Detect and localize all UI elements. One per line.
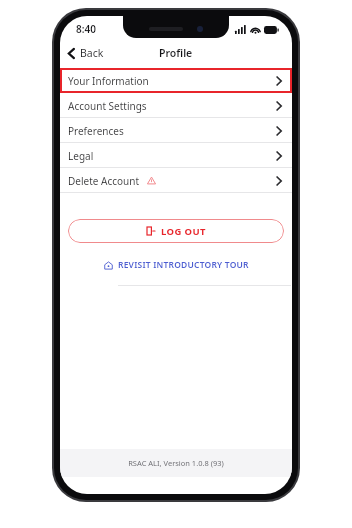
button[interactable]: Delete Account [60,168,292,193]
staticText: Legal [68,149,94,163]
button[interactable]: REVISIT INTRODUCTORY TOUR [98,257,255,273]
button[interactable]: Back [60,43,110,63]
staticText: RSAC ALI, Version 1.0.8 (93) [128,458,224,468]
button[interactable]: Account Settings [60,93,292,118]
button[interactable]: Preferences [60,118,292,143]
staticText: Your Information [68,74,149,88]
button[interactable]: Legal [60,143,292,168]
staticText: Preferences [68,124,124,138]
staticText: Delete Account [68,174,140,188]
staticText: Profile [159,46,193,60]
staticText: Account Settings [68,99,147,113]
button[interactable]: Your Information [60,68,292,93]
staticText: LOG OUT [161,225,206,238]
staticText: Back [80,46,104,60]
staticText: REVISIT INTRODUCTORY TOUR [118,259,249,271]
button[interactable]: LOG OUT [68,219,284,243]
staticText: 8:40 [76,22,96,36]
